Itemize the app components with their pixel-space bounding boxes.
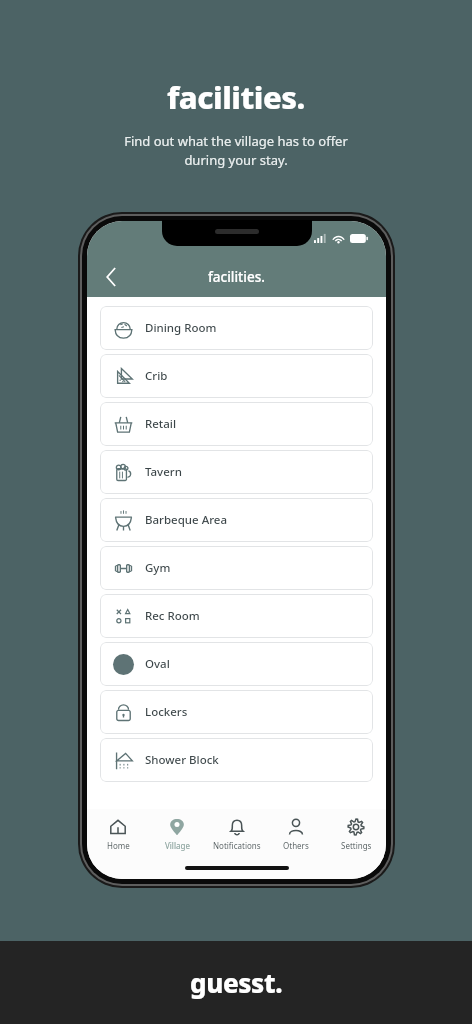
button[interactable]: Back: [93, 259, 129, 295]
button[interactable]: Village: [148, 816, 206, 853]
staticText: Retail: [145, 416, 177, 432]
button[interactable]: Settings: [327, 816, 385, 853]
staticText: Settings: [341, 840, 372, 851]
button[interactable]: Gym: [100, 546, 373, 590]
staticText: guesst.: [190, 965, 283, 1000]
button[interactable]: Rec Room: [100, 594, 373, 638]
button[interactable]: Dining Room: [100, 306, 373, 350]
staticText: Tavern: [145, 464, 182, 480]
staticText: Notifications: [213, 840, 261, 851]
button[interactable]: Oval: [100, 642, 373, 686]
button[interactable]: Tavern: [100, 450, 373, 494]
button[interactable]: Shower Block: [100, 738, 373, 782]
staticText: Crib: [145, 368, 168, 384]
staticText: facilities.: [167, 76, 305, 118]
staticText: Dining Room: [145, 320, 217, 336]
staticText: Barbeque Area: [145, 512, 227, 528]
staticText: Gym: [145, 560, 171, 576]
staticText: Find out what the village has to offer d…: [124, 132, 348, 169]
button[interactable]: Barbeque Area: [100, 498, 373, 542]
button[interactable]: Others: [267, 816, 325, 853]
button[interactable]: Crib: [100, 354, 373, 398]
staticText: Oval: [145, 656, 170, 672]
button[interactable]: Notifications: [208, 816, 266, 853]
staticText: Others: [283, 840, 309, 851]
button[interactable]: Lockers: [100, 690, 373, 734]
staticText: Shower Block: [145, 752, 219, 768]
staticText: Village: [165, 840, 190, 851]
staticText: Lockers: [145, 704, 188, 720]
staticText: Rec Room: [145, 608, 200, 624]
button[interactable]: Home: [89, 816, 147, 853]
staticText: Home: [107, 840, 130, 851]
button[interactable]: Retail: [100, 402, 373, 446]
staticText: facilities.: [208, 268, 265, 286]
